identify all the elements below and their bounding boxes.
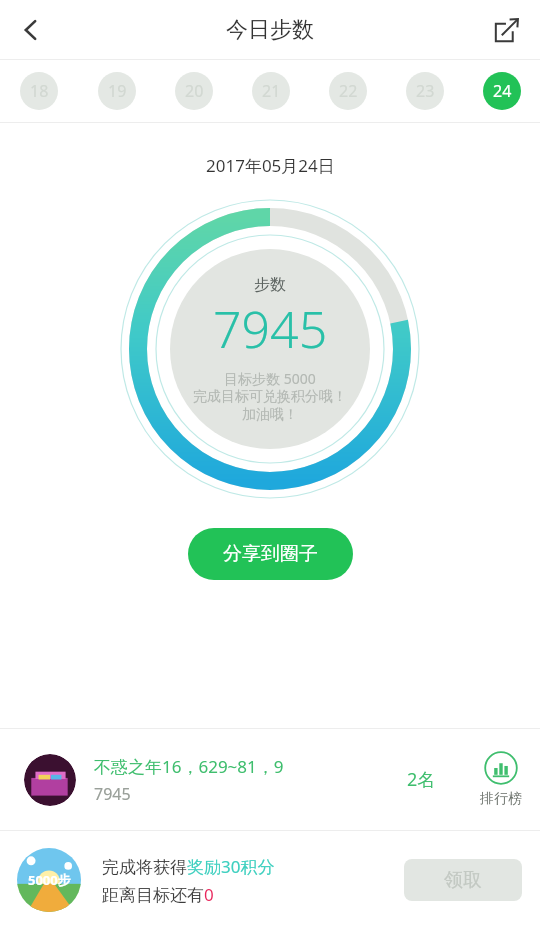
staticText: 完成目标可兑换积分哦！: [193, 388, 347, 406]
staticText: 排行榜: [480, 790, 522, 808]
button[interactable]: 21: [252, 72, 290, 110]
staticText: 19: [108, 80, 127, 102]
staticText: 加油哦！: [242, 406, 298, 424]
staticText: 24: [493, 80, 512, 102]
staticText: 20: [185, 80, 204, 102]
button[interactable]: 分享到圈子: [188, 528, 353, 580]
button[interactable]: 18: [20, 72, 58, 110]
button[interactable]: 22: [329, 72, 367, 110]
staticText: 18: [30, 80, 49, 102]
staticText: 23: [416, 80, 435, 102]
button[interactable]: 排行榜: [480, 751, 522, 808]
staticText: 目标步数 5000: [224, 369, 316, 388]
button[interactable]: 不惑之年16，629~81，9: [0, 729, 540, 830]
button[interactable]: 24: [483, 72, 521, 110]
button[interactable]: 领取: [404, 859, 522, 901]
staticText: 不惑之年16，629~81，9: [94, 755, 284, 778]
button[interactable]: 20: [175, 72, 213, 110]
button[interactable]: 23: [406, 72, 444, 110]
staticText: 2017年05月24日: [206, 154, 335, 177]
staticText: 领取: [444, 868, 482, 892]
staticText: 2名: [407, 767, 436, 792]
staticText: 今日步数: [226, 16, 314, 44]
staticText: 步数: [254, 275, 286, 295]
staticText: 完成将获得奖励30积分: [102, 855, 275, 878]
button[interactable]: 分享: [482, 5, 532, 55]
staticText: 距离目标还有0: [102, 883, 214, 906]
button[interactable]: 返回: [4, 3, 58, 57]
staticText: 21: [262, 80, 281, 102]
staticText: 5000步: [28, 871, 71, 889]
staticText: 分享到圈子: [223, 542, 318, 566]
button[interactable]: 19: [98, 72, 136, 110]
staticText: 22: [339, 80, 358, 102]
staticText: 7945: [213, 295, 328, 363]
staticText: 7945: [94, 783, 131, 805]
